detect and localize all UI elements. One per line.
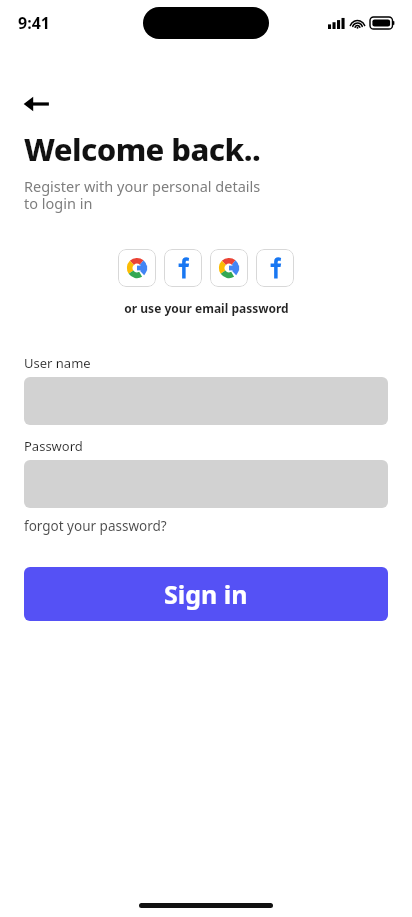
button[interactable]: Sign in with Google <box>118 249 156 287</box>
staticText: forgot your password? <box>24 517 167 535</box>
button[interactable]: Sign in with Google <box>210 249 248 287</box>
button[interactable]: Back <box>14 82 58 126</box>
staticText: Welcome back.. <box>24 128 261 170</box>
staticText: User name <box>24 354 91 372</box>
staticText: Sign in <box>164 577 248 611</box>
button[interactable]: Sign in with Facebook <box>256 249 294 287</box>
staticText: or use your email password <box>124 300 289 316</box>
button[interactable]: forgot your password? <box>24 517 167 535</box>
staticText: Register with your personal details to l… <box>24 176 261 213</box>
staticText: Password <box>24 437 83 455</box>
staticText: 9:41 <box>18 12 50 34</box>
button[interactable]: Sign in with Facebook <box>164 249 202 287</box>
button[interactable]: Sign in <box>24 567 388 621</box>
